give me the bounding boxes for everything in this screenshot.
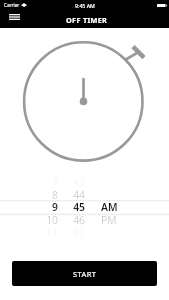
staticText: 9:45 AM [75, 2, 95, 9]
staticText: 9 [52, 200, 58, 214]
staticText: Carrier [4, 2, 20, 8]
staticText: START [73, 269, 97, 279]
staticText: 47 [73, 225, 85, 239]
staticText: PM [101, 213, 117, 227]
staticText: OFF TIMER [66, 15, 108, 25]
button[interactable]: START [12, 261, 157, 286]
staticText: AM [101, 200, 118, 214]
staticText: 10 [46, 213, 58, 227]
staticText: 44 [73, 188, 85, 202]
button[interactable]: Menu [3, 10, 25, 24]
staticText: 43 [73, 175, 85, 189]
staticText: 46 [73, 213, 85, 227]
staticText: 45 [73, 200, 85, 214]
staticText: 8 [52, 188, 58, 202]
